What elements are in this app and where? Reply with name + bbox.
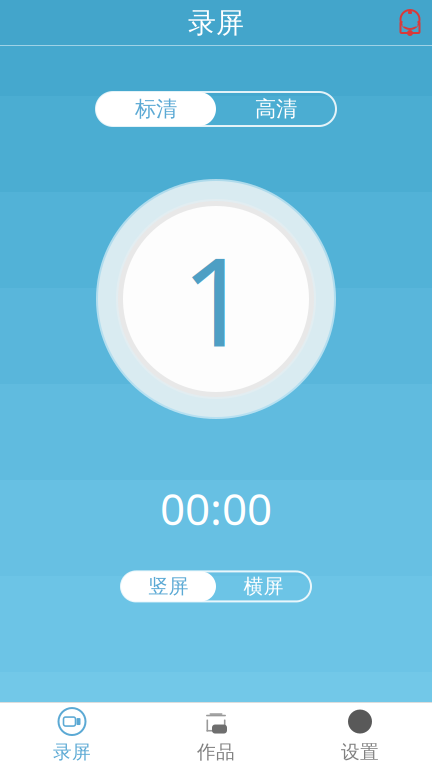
staticText: 1	[181, 218, 251, 380]
staticText: 00:00	[160, 479, 272, 537]
staticText: 高清	[255, 96, 297, 122]
button[interactable]: 标清	[96, 92, 216, 126]
staticText: 录屏	[188, 6, 244, 40]
button[interactable]: 设置	[288, 703, 432, 768]
staticText: 录屏	[53, 740, 91, 763]
button[interactable]: 通知	[388, 1, 432, 45]
button[interactable]: 开始录制	[96, 179, 336, 419]
button[interactable]: 录屏	[0, 703, 144, 768]
staticText: 作品	[197, 740, 235, 763]
staticText: 横屏	[243, 574, 283, 599]
button[interactable]: 高清	[216, 92, 336, 126]
staticText: 竖屏	[148, 574, 188, 599]
staticText: 设置	[341, 740, 379, 763]
button[interactable]: 竖屏	[121, 571, 216, 601]
staticText: 标清	[135, 96, 177, 122]
button[interactable]: 作品	[144, 703, 288, 768]
button[interactable]: 横屏	[216, 571, 311, 601]
